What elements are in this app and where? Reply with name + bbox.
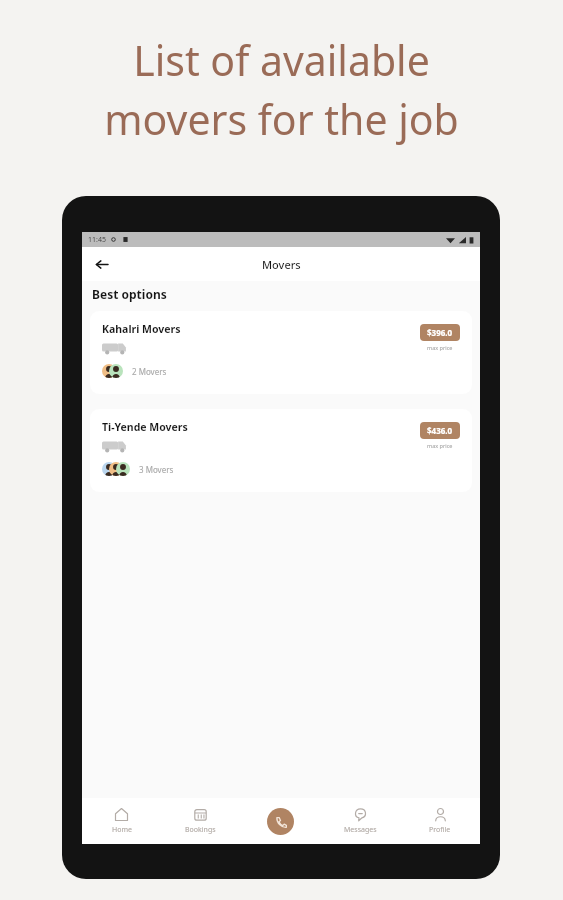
staticText: Best options — [92, 286, 167, 302]
staticText: Home — [112, 825, 132, 835]
staticText: 2 Movers — [132, 366, 167, 377]
button[interactable]: Profile — [400, 798, 480, 844]
staticText: Messages — [344, 825, 377, 835]
staticText: max price — [427, 344, 453, 351]
staticText: 11:45 — [88, 235, 106, 245]
button[interactable]: Kahalri Movers — [90, 311, 472, 394]
staticText: Ti-Yende Movers — [102, 420, 188, 434]
staticText: Kahalri Movers — [102, 322, 181, 336]
staticText: List of available — [133, 32, 430, 88]
button[interactable]: Call — [267, 808, 294, 835]
button[interactable]: Home — [82, 798, 161, 844]
button[interactable]: Ti-Yende Movers — [90, 409, 472, 492]
staticText: 3 Movers — [139, 464, 174, 475]
button[interactable]: Bookings — [161, 798, 240, 844]
staticText: $436.0 — [427, 425, 453, 436]
staticText: $396.0 — [427, 327, 453, 338]
staticText: max price — [427, 442, 453, 449]
staticText: movers for the job — [104, 91, 459, 147]
staticText: Movers — [262, 257, 301, 272]
staticText: Profile — [429, 825, 451, 835]
staticText: Bookings — [185, 825, 216, 835]
button[interactable]: Back — [88, 251, 114, 277]
button[interactable]: Messages — [320, 798, 400, 844]
